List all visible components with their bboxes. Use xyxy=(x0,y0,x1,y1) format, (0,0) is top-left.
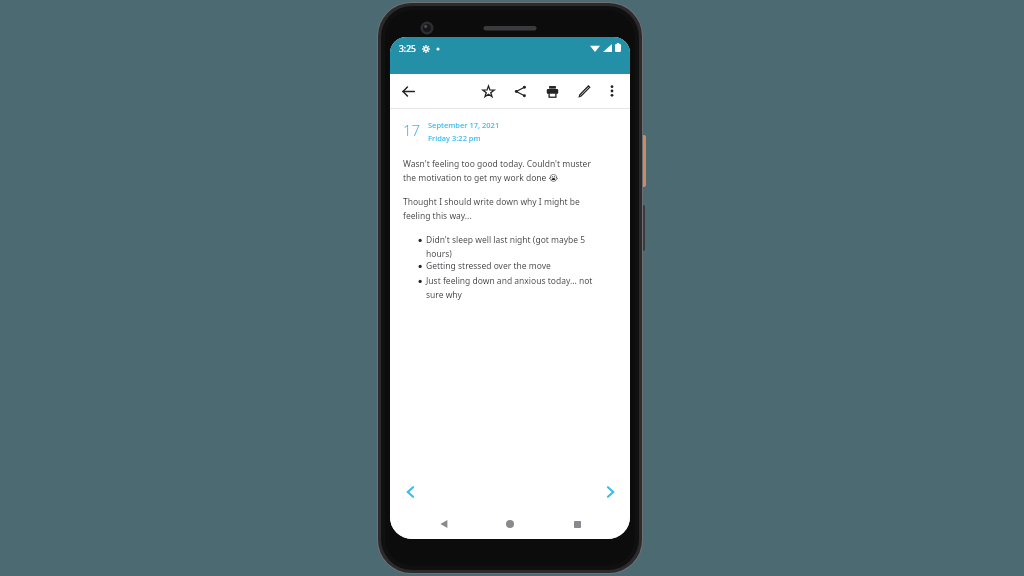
staticText: September 17, 2021 xyxy=(428,120,500,130)
staticText: 3:25 xyxy=(399,43,416,55)
staticText: Thought I should write down why I might … xyxy=(403,196,580,221)
button[interactable]: Favorite xyxy=(475,78,501,104)
button[interactable]: Share xyxy=(507,78,533,104)
staticText: Getting stressed over the move xyxy=(426,260,551,272)
button[interactable]: Home xyxy=(497,511,523,537)
button[interactable]: Back xyxy=(395,78,421,104)
button[interactable]: More options xyxy=(600,79,624,103)
staticText: 17 xyxy=(403,120,421,140)
button[interactable]: Recent apps xyxy=(564,511,590,537)
button[interactable]: Previous note xyxy=(398,480,422,504)
staticText: Wasn't feeling too good today. Couldn't … xyxy=(403,158,591,184)
staticText: Friday 3:22 pm xyxy=(428,133,481,143)
staticText: Just feeling down and anxious today... n… xyxy=(426,275,593,300)
button[interactable]: Back xyxy=(431,511,457,537)
button[interactable]: Next note xyxy=(598,480,622,504)
button[interactable]: Edit xyxy=(571,78,597,104)
button[interactable]: Print xyxy=(539,78,565,104)
staticText: Didn't sleep well last night (got maybe … xyxy=(426,234,586,259)
